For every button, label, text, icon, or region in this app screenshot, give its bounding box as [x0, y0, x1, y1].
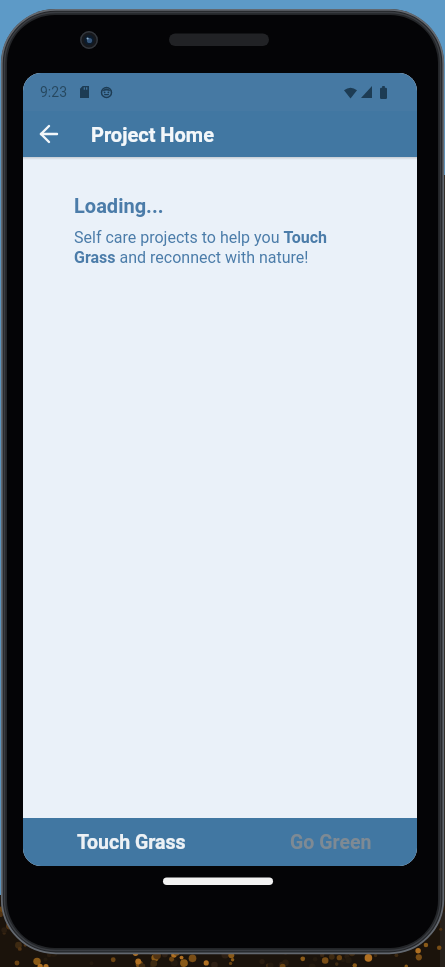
staticText: Project Home: [91, 123, 214, 146]
staticText: 9:23: [40, 84, 67, 100]
staticText: Go Green: [290, 831, 372, 854]
staticText: Touch Grass: [77, 831, 186, 854]
staticText: Self care projects to help you Touch Gra…: [74, 228, 328, 267]
staticText: Loading...: [74, 194, 164, 217]
